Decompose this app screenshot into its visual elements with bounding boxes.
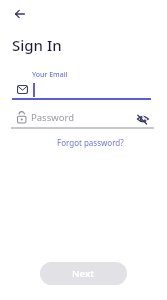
button[interactable] [12, 80, 151, 100]
staticText: Next [72, 267, 95, 280]
button[interactable]: Next [40, 262, 127, 285]
staticText: Password [31, 111, 74, 124]
button[interactable] [11, 109, 154, 129]
staticText: Your Email [32, 70, 68, 80]
button[interactable] [136, 111, 150, 125]
button[interactable] [12, 6, 28, 22]
button[interactable]: Forgot password? [57, 137, 124, 148]
staticText: Sign In [12, 35, 62, 55]
